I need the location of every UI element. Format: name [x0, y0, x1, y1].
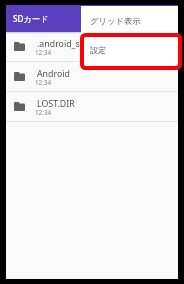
staticText: 12:34	[35, 108, 52, 117]
staticText: LOST.DIR	[37, 98, 75, 110]
staticText: グリッド表示	[90, 16, 141, 26]
staticText: SDカード	[13, 13, 49, 24]
button[interactable]: .android_secure	[6, 32, 178, 62]
button[interactable]: LOST.DIR	[6, 92, 178, 122]
staticText: .android_secure	[37, 38, 103, 50]
button[interactable]: 設定	[81, 35, 178, 64]
button[interactable]: Android	[6, 62, 178, 92]
staticText: 設定	[90, 45, 107, 55]
staticText: 12:34	[35, 48, 52, 57]
staticText: 12:34	[35, 78, 52, 87]
staticText: Android	[37, 68, 70, 80]
button[interactable]: グリッド表示	[81, 6, 178, 35]
